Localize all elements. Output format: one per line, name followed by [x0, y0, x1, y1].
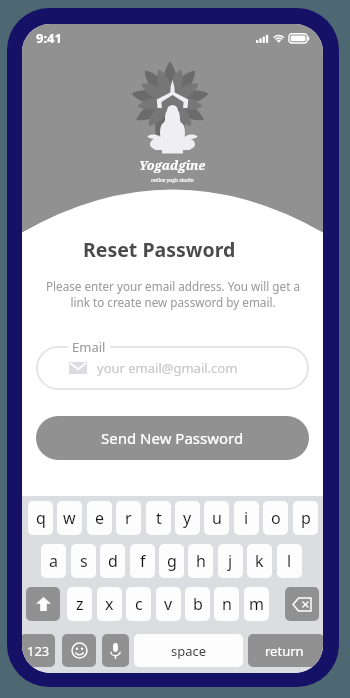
staticText: return — [265, 642, 304, 660]
button[interactable]: s — [71, 544, 96, 578]
staticText: space — [171, 642, 207, 660]
staticText: 123 — [27, 642, 50, 660]
staticText: z — [76, 593, 84, 615]
staticText: x — [105, 593, 114, 615]
button[interactable]: v — [156, 587, 181, 621]
staticText: y — [183, 507, 192, 529]
button[interactable]: o — [263, 501, 288, 535]
button[interactable]: l — [277, 544, 302, 578]
button[interactable]: Shift — [26, 587, 60, 621]
button[interactable]: h — [188, 544, 213, 578]
staticText: your email@gmail.com — [97, 359, 238, 377]
button[interactable]: m — [244, 587, 269, 621]
staticText: d — [108, 550, 118, 572]
button[interactable]: x — [97, 587, 122, 621]
staticText: t — [156, 507, 162, 529]
button[interactable]: Send New Password — [36, 416, 309, 460]
staticText: b — [193, 593, 203, 615]
staticText: a — [49, 550, 58, 572]
staticText: o — [271, 507, 281, 529]
button[interactable]: u — [204, 501, 229, 535]
staticText: q — [36, 507, 46, 529]
other: Email icon — [69, 362, 87, 374]
staticText: u — [212, 507, 222, 529]
button[interactable]: z — [67, 587, 92, 621]
staticText: c — [135, 593, 143, 615]
button[interactable]: Email icon — [36, 346, 309, 390]
staticText: h — [196, 550, 206, 572]
button[interactable]: Emoji — [62, 634, 96, 667]
button[interactable]: return — [248, 634, 323, 667]
staticText: Reset Password — [83, 236, 236, 263]
button[interactable]: y — [175, 501, 200, 535]
staticText: k — [255, 550, 264, 572]
button[interactable]: w — [57, 501, 82, 535]
staticText: g — [167, 550, 177, 572]
button[interactable]: q — [28, 501, 53, 535]
staticText: Send New Password — [101, 428, 244, 448]
staticText: n — [222, 593, 232, 615]
button[interactable]: b — [185, 587, 210, 621]
staticText: j — [228, 550, 233, 572]
staticText: s — [80, 550, 88, 572]
staticText: f — [140, 550, 146, 572]
button[interactable]: g — [159, 544, 184, 578]
button[interactable]: c — [126, 587, 151, 621]
button[interactable]: t — [146, 501, 171, 535]
staticText: w — [63, 507, 76, 529]
button[interactable]: f — [130, 544, 155, 578]
staticText: v — [164, 593, 173, 615]
button[interactable]: e — [87, 501, 112, 535]
staticText: Email — [72, 338, 106, 356]
staticText: l — [287, 550, 292, 572]
staticText: e — [95, 507, 105, 529]
button[interactable]: a — [41, 544, 66, 578]
staticText: online yoga studio — [151, 177, 194, 184]
button[interactable]: space — [134, 634, 243, 667]
staticText: Yogadgine — [139, 157, 206, 174]
staticText: 9:41 — [36, 29, 62, 47]
staticText: i — [244, 507, 249, 529]
staticText: r — [125, 507, 132, 529]
button[interactable]: Backspace — [285, 587, 319, 621]
staticText: m — [249, 593, 264, 615]
button[interactable]: r — [116, 501, 141, 535]
staticText: Please enter your email address. You wil… — [46, 278, 300, 311]
button[interactable]: Dictate — [102, 634, 129, 667]
button[interactable]: k — [247, 544, 272, 578]
staticText: p — [301, 507, 311, 529]
button[interactable]: i — [234, 501, 259, 535]
button[interactable]: 123 — [22, 634, 55, 667]
button[interactable]: j — [218, 544, 243, 578]
button[interactable]: d — [100, 544, 125, 578]
button[interactable]: p — [293, 501, 318, 535]
button[interactable]: n — [214, 587, 239, 621]
